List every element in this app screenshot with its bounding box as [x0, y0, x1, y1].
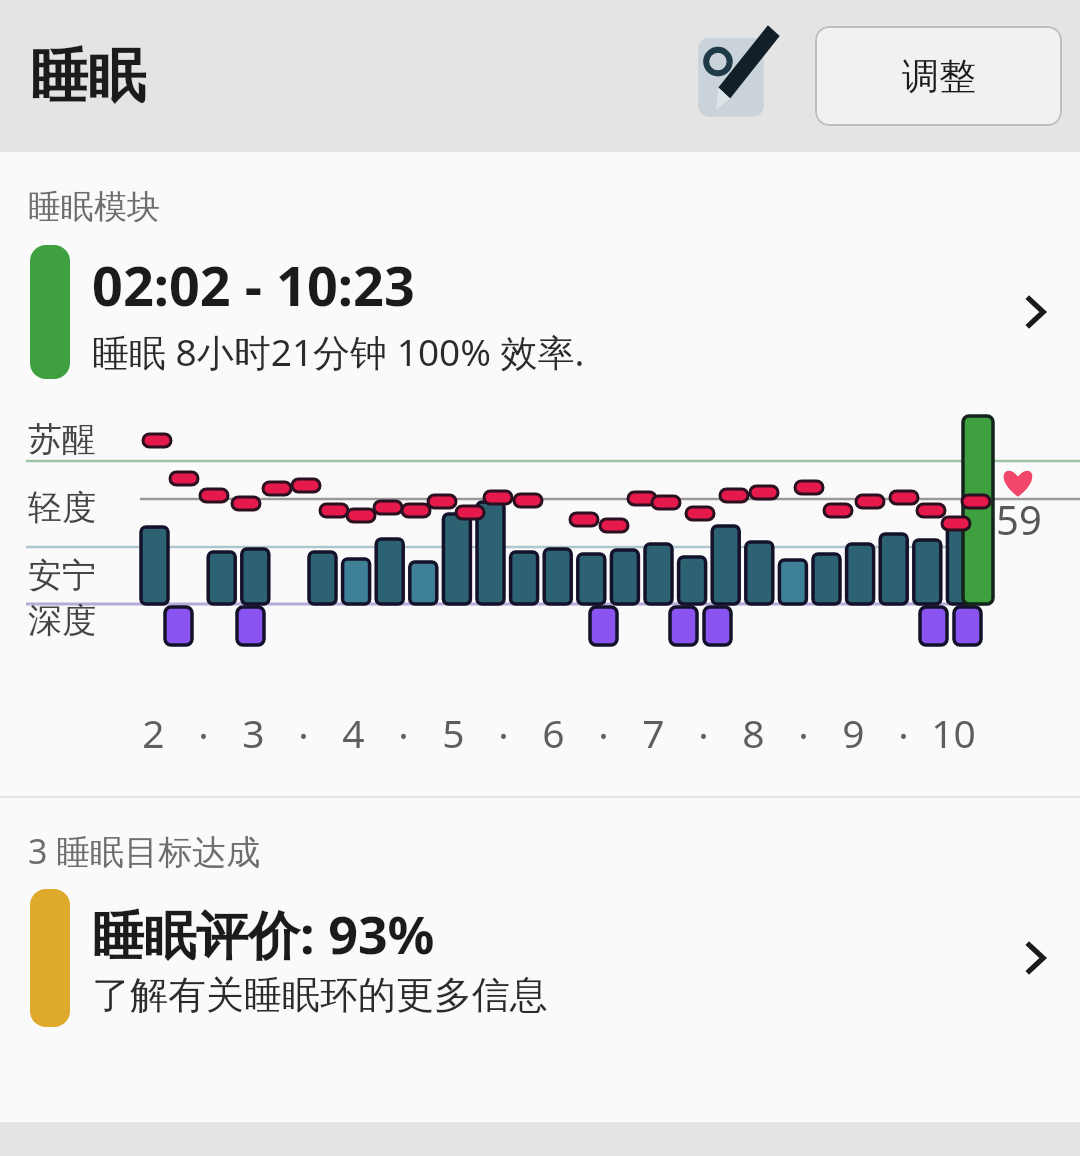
- staticText: 调整: [902, 53, 976, 100]
- staticText: 9: [842, 706, 865, 756]
- staticText: 睡眠模块: [28, 186, 160, 228]
- staticText: 6: [542, 706, 565, 756]
- staticText: 轻度: [28, 486, 96, 529]
- staticText: 睡眠评价: 93%: [92, 898, 435, 969]
- staticText: 59: [996, 492, 1042, 546]
- staticText: 睡眠 8小时21分钟 100% 效率.: [92, 326, 585, 377]
- staticText: 2: [142, 706, 165, 756]
- staticText: ·: [698, 708, 709, 758]
- button[interactable]: 调整: [815, 26, 1062, 126]
- staticText: 3 睡眠目标达成: [28, 828, 261, 874]
- button[interactable]: Edit: [694, 20, 778, 124]
- staticText: 苏醒: [28, 418, 96, 461]
- staticText: 7: [642, 706, 665, 756]
- staticText: ·: [598, 708, 609, 758]
- staticText: 安宁: [28, 554, 96, 597]
- staticText: 8: [742, 706, 765, 756]
- staticText: 了解有关睡眠环的更多信息: [92, 971, 548, 1019]
- staticText: ·: [498, 708, 509, 758]
- staticText: 10: [931, 706, 976, 756]
- button[interactable]: 02:02 - 10:23: [0, 244, 1080, 380]
- staticText: 3: [242, 706, 265, 756]
- staticText: 深度: [28, 599, 96, 642]
- staticText: ·: [398, 708, 409, 758]
- staticText: ·: [198, 708, 209, 758]
- staticText: 5: [442, 706, 465, 756]
- staticText: ·: [798, 708, 809, 758]
- staticText: 4: [342, 706, 365, 756]
- staticText: ·: [298, 708, 309, 758]
- staticText: 睡眠: [30, 40, 146, 113]
- staticText: 02:02 - 10:23: [92, 248, 415, 322]
- button[interactable]: 睡眠评价: 93%: [0, 888, 1080, 1028]
- staticText: ·: [898, 708, 909, 758]
